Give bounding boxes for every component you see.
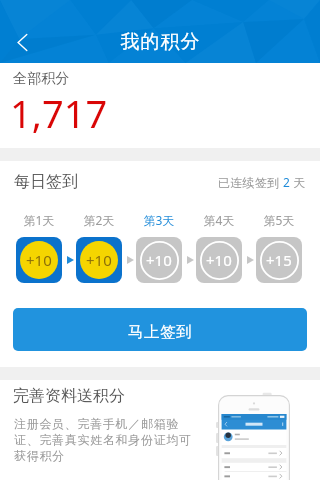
button[interactable]: Back — [0, 22, 42, 62]
button[interactable]: +10 — [76, 237, 122, 283]
staticText: 完善资料送积分 — [13, 386, 125, 406]
button[interactable]: +10 — [196, 237, 242, 283]
staticText: 马上签到 — [128, 322, 193, 342]
staticText: 第5天 — [256, 212, 302, 228]
staticText: 全部积分 — [13, 70, 70, 88]
staticText: 已连续签到 2 天 — [218, 174, 306, 190]
staticText: 每日签到 — [14, 172, 78, 192]
staticText: 第1天 — [16, 212, 62, 228]
button[interactable]: 马上签到 — [13, 308, 307, 351]
button[interactable]: +15 — [256, 237, 302, 283]
staticText: 第3天 — [136, 212, 182, 228]
staticText: +10 — [86, 250, 112, 270]
button[interactable]: +10 — [136, 237, 182, 283]
staticText: +10 — [26, 250, 52, 270]
staticText: +10 — [206, 250, 232, 270]
staticText: +10 — [146, 250, 172, 270]
button[interactable]: +10 — [16, 237, 62, 283]
staticText: 我的积分 — [120, 30, 200, 54]
staticText: 1,717 — [10, 87, 108, 139]
staticText: 第4天 — [196, 212, 242, 228]
staticText: +15 — [266, 250, 292, 270]
staticText: 注册会员、完善手机／邮箱验证、完善真实姓名和身份证均可获得积分 — [14, 416, 194, 464]
staticText: 第2天 — [76, 212, 122, 228]
